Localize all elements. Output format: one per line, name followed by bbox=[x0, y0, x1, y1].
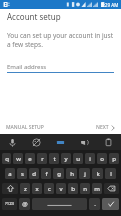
button[interactable]: g bbox=[53, 168, 64, 179]
staticText: @ bbox=[22, 200, 28, 208]
staticText: o bbox=[100, 155, 104, 163]
staticText: b bbox=[71, 185, 75, 193]
button[interactable]: w bbox=[13, 153, 23, 164]
staticText: NEXT bbox=[96, 124, 109, 131]
button[interactable]: @ bbox=[19, 198, 30, 210]
button[interactable]: u bbox=[73, 153, 83, 164]
button[interactable]: Sticker bbox=[24, 134, 48, 150]
staticText: 3:29 AM bbox=[101, 2, 119, 8]
button[interactable]: Voice input bbox=[0, 134, 24, 150]
button[interactable]: Backspace bbox=[104, 183, 119, 194]
staticText: x bbox=[35, 185, 39, 193]
button[interactable]: NEXT bbox=[90, 121, 121, 134]
button[interactable]: o bbox=[97, 153, 107, 164]
staticText: MANUAL SETUP bbox=[6, 124, 44, 131]
staticText: ?123 bbox=[5, 201, 15, 207]
staticText: n bbox=[83, 185, 87, 193]
staticText: a bbox=[8, 170, 12, 178]
button[interactable]: k bbox=[92, 168, 103, 179]
staticText: l bbox=[110, 170, 112, 178]
staticText: z bbox=[24, 185, 27, 193]
button[interactable]: j bbox=[79, 168, 90, 179]
staticText: i bbox=[89, 155, 91, 163]
button[interactable]: Shift bbox=[2, 183, 18, 194]
staticText: g bbox=[57, 170, 61, 178]
button[interactable]: r bbox=[37, 153, 47, 164]
staticText: Account setup bbox=[7, 11, 61, 22]
button[interactable]: Space bbox=[32, 198, 87, 210]
button[interactable]: GIF bbox=[48, 134, 72, 150]
staticText: v bbox=[59, 185, 63, 193]
staticText: r bbox=[41, 155, 44, 163]
button[interactable]: t bbox=[49, 153, 59, 164]
button[interactable]: z bbox=[20, 183, 30, 194]
staticText: . bbox=[94, 200, 96, 208]
staticText: m bbox=[94, 185, 100, 193]
button[interactable]: m bbox=[92, 183, 102, 194]
button[interactable]: c bbox=[44, 183, 54, 194]
button[interactable]: d bbox=[29, 168, 39, 179]
button[interactable]: f bbox=[41, 168, 51, 179]
staticText: y bbox=[64, 155, 68, 163]
button[interactable]: a bbox=[5, 168, 15, 179]
staticText: q bbox=[5, 155, 9, 163]
button[interactable]: y bbox=[61, 153, 71, 164]
button[interactable]: x bbox=[32, 183, 42, 194]
staticText: w bbox=[16, 155, 21, 163]
staticText: Email address bbox=[7, 63, 47, 71]
staticText: j bbox=[84, 170, 86, 178]
staticText: h bbox=[70, 170, 74, 178]
button[interactable]: b bbox=[68, 183, 78, 194]
staticText: f bbox=[45, 170, 48, 178]
button[interactable]: . bbox=[89, 198, 100, 210]
staticText: t bbox=[53, 155, 56, 163]
staticText: k bbox=[96, 170, 100, 178]
button[interactable]: s bbox=[17, 168, 27, 179]
staticText: e bbox=[28, 155, 32, 163]
button[interactable]: e bbox=[25, 153, 35, 164]
staticText: d bbox=[32, 170, 36, 178]
button[interactable]: n bbox=[80, 183, 90, 194]
button[interactable]: i bbox=[85, 153, 95, 164]
button[interactable]: v bbox=[56, 183, 66, 194]
button[interactable]: Translate bbox=[72, 134, 96, 150]
button[interactable]: p bbox=[109, 153, 119, 164]
button[interactable]: Enter bbox=[102, 198, 119, 210]
staticText: s bbox=[21, 170, 24, 178]
button[interactable]: q bbox=[2, 153, 11, 164]
staticText: You can set up your account in just a fe… bbox=[7, 31, 114, 49]
button[interactable]: h bbox=[66, 168, 77, 179]
button[interactable]: Email address bbox=[7, 61, 114, 72]
button[interactable]: ?123 bbox=[2, 198, 17, 210]
button[interactable]: Clipboard bbox=[96, 134, 120, 150]
button[interactable]: l bbox=[105, 168, 116, 179]
staticText: p bbox=[112, 155, 116, 163]
staticText: c bbox=[48, 185, 51, 193]
button[interactable]: MANUAL SETUP bbox=[0, 121, 50, 134]
staticText: u bbox=[76, 155, 80, 163]
